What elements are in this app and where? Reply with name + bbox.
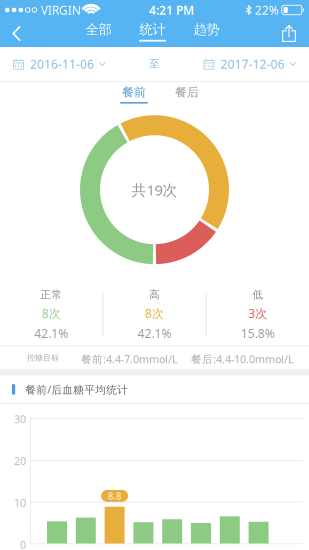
- button[interactable]: 2017-12-06: [199, 47, 300, 81]
- staticText: 10: [14, 496, 26, 510]
- staticText: 15.8%: [241, 325, 275, 341]
- staticText: 22%: [255, 2, 279, 18]
- button[interactable]: 餐前: [112, 82, 155, 108]
- staticText: 3次: [248, 305, 267, 321]
- staticText: 控糖目标: [27, 353, 59, 363]
- staticText: 全部: [85, 21, 111, 38]
- staticText: 8次: [145, 305, 164, 321]
- staticText: 统计: [139, 21, 165, 38]
- staticText: 0: [20, 537, 26, 550]
- staticText: 餐后: [175, 85, 199, 99]
- staticText: 餐前/后血糖平均统计: [25, 382, 128, 396]
- staticText: 低: [252, 288, 263, 301]
- staticText: 42.1%: [137, 325, 171, 341]
- staticText: 2016-11-06: [30, 56, 94, 72]
- button[interactable]: 餐后: [165, 82, 208, 108]
- staticText: 20: [14, 454, 26, 468]
- staticText: 餐后:4.4-10.0mmol/L: [191, 352, 294, 366]
- staticText: 至: [149, 57, 160, 70]
- button[interactable]: 2016-11-06: [9, 47, 110, 81]
- staticText: 4:21 PM: [149, 2, 194, 18]
- staticText: 2017-12-06: [220, 56, 284, 72]
- staticText: 餐前: [122, 85, 146, 99]
- button[interactable]: 统计: [125, 20, 179, 47]
- button[interactable]: 趋势: [179, 20, 233, 47]
- staticText: 42.1%: [34, 325, 68, 341]
- staticText: 正常: [40, 288, 62, 301]
- staticText: 共19次: [131, 180, 177, 199]
- button[interactable]: 全部: [71, 20, 125, 47]
- staticText: 高: [149, 288, 160, 301]
- button[interactable]: Back: [0, 20, 35, 47]
- staticText: 30: [14, 412, 26, 426]
- staticText: 趋势: [193, 21, 219, 38]
- staticText: VIRGIN: [41, 2, 81, 18]
- staticText: 8.8: [108, 490, 121, 502]
- button[interactable]: Share: [269, 20, 309, 47]
- staticText: 餐前:4.4-7.0mmol/L: [81, 352, 178, 366]
- staticText: 8次: [42, 305, 61, 321]
